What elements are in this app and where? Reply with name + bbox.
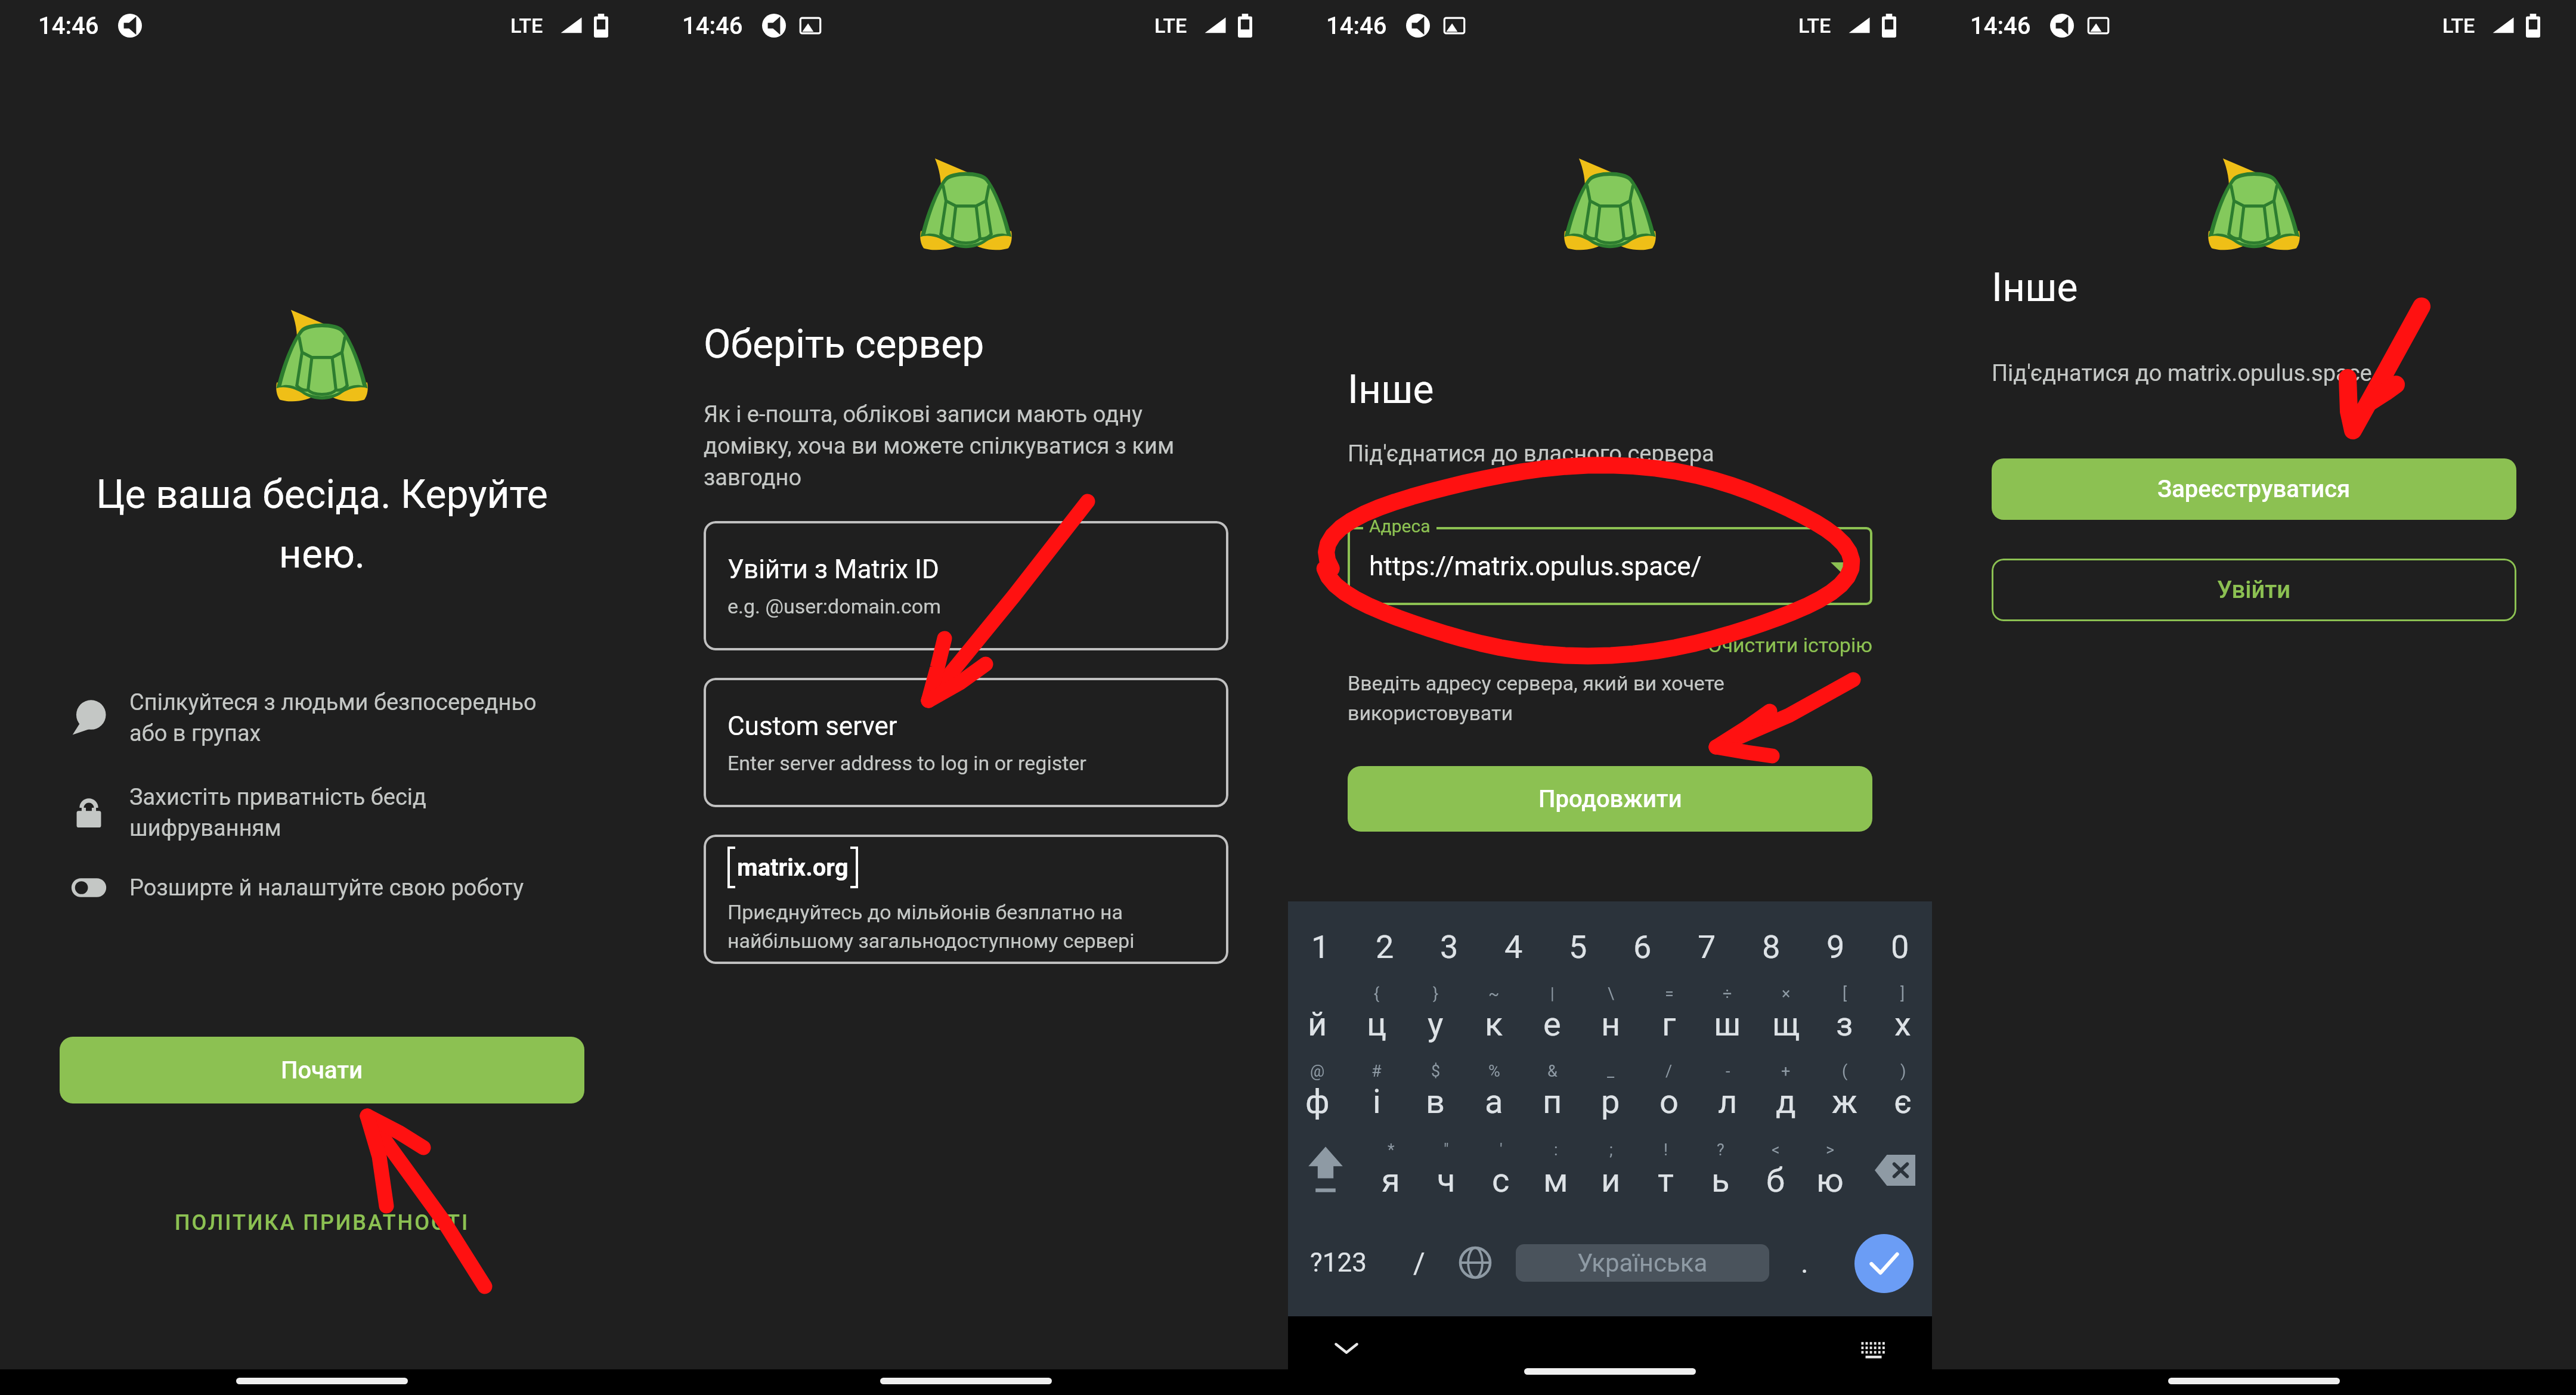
- button[interactable]: *: [1363, 1130, 1419, 1210]
- staticText: Під'єднатися до власного сервера: [1348, 441, 1714, 467]
- staticText: 5: [1569, 928, 1587, 966]
- button[interactable]: 5: [1546, 918, 1610, 975]
- staticText: н: [1601, 1005, 1621, 1044]
- staticText: р: [1601, 1082, 1620, 1121]
- button[interactable]: /: [1401, 1226, 1437, 1300]
- button[interactable]: ?: [1693, 1130, 1748, 1210]
- staticText: :: [1554, 1140, 1558, 1160]
- button[interactable]: ": [1419, 1130, 1473, 1210]
- staticText: ПОЛІТИКА ПРИВАТНОСТІ: [175, 1210, 470, 1235]
- button[interactable]: :: [1528, 1130, 1583, 1210]
- staticText: ÷: [1723, 984, 1732, 1003]
- staticText: а: [1485, 1082, 1503, 1121]
- button[interactable]: Зареєструватися: [1992, 458, 2516, 520]
- button[interactable]: .: [1788, 1226, 1821, 1300]
- button[interactable]: Backspace: [1857, 1130, 1932, 1210]
- staticText: 14:46: [682, 12, 743, 40]
- button[interactable]: 3: [1417, 918, 1481, 975]
- staticText: і: [1373, 1082, 1381, 1121]
- button[interactable]: ?123: [1302, 1226, 1374, 1300]
- button[interactable]: =: [1640, 975, 1698, 1053]
- staticText: 14:46: [38, 12, 99, 40]
- staticText: !: [1664, 1140, 1668, 1160]
- button[interactable]: /: [1640, 1053, 1698, 1130]
- button[interactable]: }: [1406, 975, 1465, 1053]
- staticText: 6: [1633, 928, 1652, 966]
- button[interactable]: Очистити історію: [1708, 633, 1872, 657]
- button[interactable]: ×: [1757, 975, 1815, 1053]
- button[interactable]: ]: [1874, 975, 1932, 1053]
- button[interactable]: й: [1288, 975, 1347, 1053]
- button[interactable]: Change language: [1452, 1226, 1498, 1300]
- button[interactable]: Почати: [60, 1037, 584, 1103]
- button[interactable]: Увійти: [1992, 559, 2516, 621]
- button[interactable]: 9: [1803, 918, 1868, 975]
- staticText: LTE: [1798, 14, 1831, 38]
- button[interactable]: [1348, 527, 1872, 605]
- button[interactable]: ~: [1465, 975, 1523, 1053]
- button[interactable]: %: [1465, 1053, 1523, 1130]
- button[interactable]: Продовжити: [1348, 766, 1872, 832]
- button[interactable]: Українська: [1516, 1244, 1769, 1282]
- staticText: LTE: [1154, 14, 1187, 38]
- staticText: #: [1371, 1062, 1382, 1081]
- other: Show history: [1831, 556, 1851, 576]
- button[interactable]: !: [1638, 1130, 1693, 1210]
- staticText: у: [1428, 1005, 1444, 1044]
- button[interactable]: $: [1406, 1053, 1465, 1130]
- staticText: Введіть адресу сервера, який ви хочете в…: [1348, 671, 1872, 725]
- button[interactable]: ÷: [1698, 975, 1757, 1053]
- button[interactable]: 2: [1352, 918, 1417, 975]
- button[interactable]: 8: [1739, 918, 1803, 975]
- button[interactable]: &: [1523, 1053, 1581, 1130]
- staticText: и: [1601, 1161, 1621, 1200]
- staticText: ~: [1488, 984, 1500, 1003]
- staticText: Увійти: [2217, 576, 2291, 604]
- button[interactable]: 4: [1481, 918, 1546, 975]
- button[interactable]: 0: [1868, 918, 1932, 975]
- button[interactable]: Custom server: [704, 678, 1228, 807]
- staticText: ?123: [1310, 1247, 1367, 1278]
- button[interactable]: matrix.org: [704, 835, 1228, 964]
- button[interactable]: ;: [1583, 1130, 1638, 1210]
- staticText: щ: [1772, 1005, 1800, 1044]
- button[interactable]: ): [1874, 1053, 1932, 1130]
- staticText: =: [1665, 984, 1674, 1003]
- staticText: д: [1776, 1082, 1796, 1121]
- button[interactable]: (: [1815, 1053, 1874, 1130]
- button[interactable]: 6: [1610, 918, 1674, 975]
- button[interactable]: \: [1581, 975, 1640, 1053]
- staticText: Це ваша бесіда. Керуйте нею.: [86, 472, 558, 577]
- staticText: ф: [1305, 1082, 1330, 1121]
- staticText: Розширте й налаштуйте свою роботу: [129, 875, 524, 901]
- button[interactable]: ': [1473, 1130, 1528, 1210]
- staticText: Почати: [281, 1056, 363, 1084]
- button[interactable]: #: [1347, 1053, 1406, 1130]
- button[interactable]: @: [1288, 1053, 1347, 1130]
- button[interactable]: Shift: [1288, 1130, 1363, 1210]
- button[interactable]: [: [1815, 975, 1874, 1053]
- staticText: ч: [1437, 1161, 1456, 1200]
- staticText: 14:46: [1970, 12, 2031, 40]
- button[interactable]: ПОЛІТИКА ПРИВАТНОСТІ: [163, 1204, 482, 1241]
- button[interactable]: {: [1347, 975, 1406, 1053]
- staticText: й: [1308, 1005, 1327, 1044]
- staticText: Спілкуйтеся з людьми безпосередньо або в…: [129, 689, 552, 746]
- staticText: <: [1772, 1140, 1780, 1160]
- button[interactable]: >: [1803, 1130, 1857, 1210]
- staticText: ж: [1832, 1082, 1857, 1121]
- staticText: ]: [1900, 984, 1905, 1003]
- button[interactable]: -: [1698, 1053, 1757, 1130]
- staticText: Увійти з Matrix ID: [727, 554, 939, 585]
- button[interactable]: <: [1748, 1130, 1803, 1210]
- staticText: >: [1826, 1140, 1835, 1160]
- button[interactable]: +: [1757, 1053, 1815, 1130]
- button[interactable]: |: [1523, 975, 1581, 1053]
- button[interactable]: 7: [1674, 918, 1739, 975]
- staticText: х: [1894, 1005, 1911, 1044]
- button[interactable]: Done: [1854, 1234, 1914, 1293]
- staticText: є: [1894, 1082, 1912, 1121]
- button[interactable]: _: [1581, 1053, 1640, 1130]
- button[interactable]: Увійти з Matrix ID: [704, 521, 1228, 650]
- button[interactable]: 1: [1288, 918, 1352, 975]
